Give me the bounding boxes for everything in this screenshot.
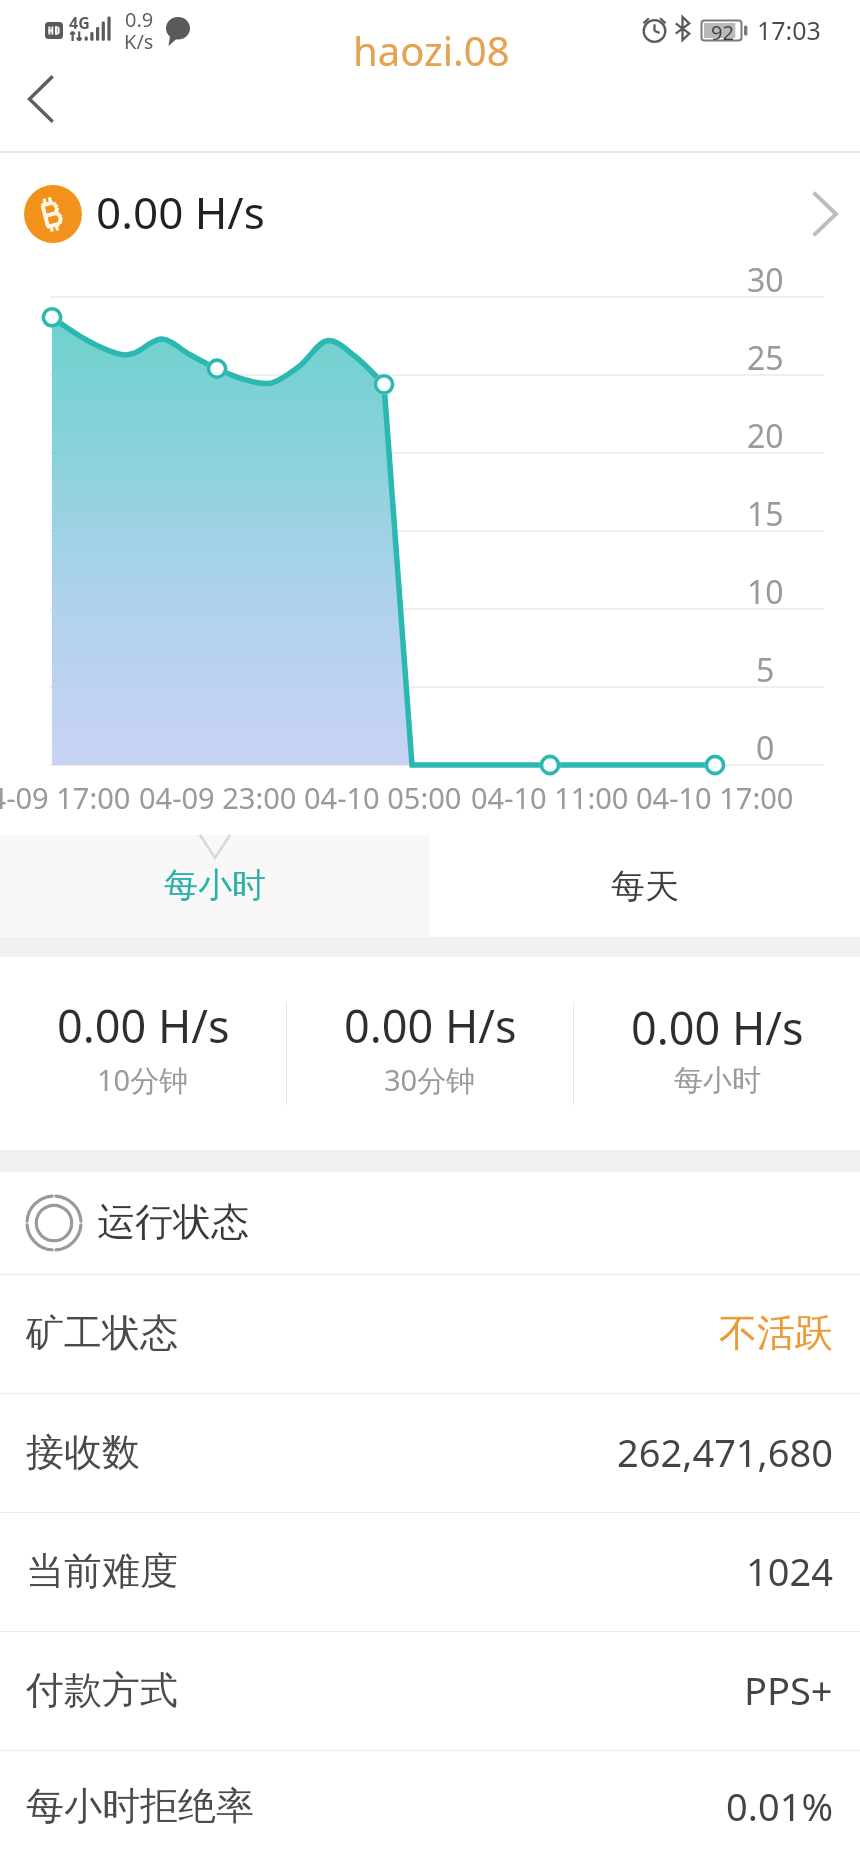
staticText: 04-10 11:00 bbox=[471, 778, 629, 817]
staticText: 0.01% bbox=[726, 1780, 833, 1832]
staticText: 0.00 H/s bbox=[57, 995, 230, 1056]
staticText: 付款方式 bbox=[26, 1666, 178, 1714]
button[interactable]: 0.00 H/s bbox=[0, 1001, 286, 1106]
staticText: 当前难度 bbox=[26, 1547, 178, 1595]
staticText: 每天 bbox=[611, 865, 679, 908]
staticText: 30 bbox=[747, 258, 784, 302]
staticText: 矿工状态 bbox=[26, 1309, 178, 1357]
staticText: 5 bbox=[756, 648, 775, 692]
staticText: 04-09 23:00 bbox=[139, 778, 297, 817]
staticText: 每小时 bbox=[674, 1062, 761, 1099]
staticText: PPS+ bbox=[744, 1664, 833, 1716]
staticText: 每小时拒绝率 bbox=[26, 1782, 254, 1830]
button[interactable]: 矿工状态 bbox=[0, 1274, 860, 1393]
button[interactable]: 运行状态 bbox=[0, 1172, 860, 1274]
button[interactable]: 每小时 bbox=[0, 835, 430, 937]
staticText: 20 bbox=[747, 414, 784, 458]
staticText: 04-10 17:00 bbox=[636, 778, 794, 817]
button[interactable]: 0.00 H/s bbox=[287, 1001, 573, 1106]
staticText: 接收数 bbox=[26, 1428, 140, 1476]
staticText: 17:03 bbox=[757, 13, 821, 47]
staticText: 15 bbox=[747, 492, 784, 536]
staticText: 10分钟 bbox=[97, 1060, 189, 1100]
staticText: 0.00 H/s bbox=[96, 182, 265, 242]
button[interactable]: 每天 bbox=[430, 835, 860, 937]
other: Details bbox=[814, 194, 836, 234]
staticText: 04-10 05:00 bbox=[304, 778, 462, 817]
staticText: 1024 bbox=[746, 1545, 833, 1597]
staticText: 不活跃 bbox=[719, 1309, 833, 1357]
staticText: 每小时 bbox=[164, 864, 266, 907]
button[interactable]: 接收数 bbox=[0, 1393, 860, 1512]
button[interactable]: 当前难度 bbox=[0, 1512, 860, 1631]
staticText: 0.00 H/s bbox=[631, 997, 804, 1058]
button[interactable]: 每小时拒绝率 bbox=[0, 1750, 860, 1863]
staticText: 10 bbox=[747, 570, 784, 614]
staticText: 92 bbox=[711, 19, 734, 46]
staticText: 25 bbox=[747, 336, 784, 380]
staticText: 0.9 bbox=[125, 6, 154, 33]
staticText: haozi.08 bbox=[353, 23, 510, 77]
staticText: 0.00 H/s bbox=[344, 995, 517, 1056]
button[interactable]: 付款方式 bbox=[0, 1631, 860, 1750]
staticText: 运行状态 bbox=[97, 1198, 249, 1246]
staticText: 04-09 17:00 bbox=[0, 778, 131, 817]
staticText: K/s bbox=[124, 28, 154, 55]
staticText: 4G bbox=[69, 12, 90, 34]
staticText: 262,471,680 bbox=[617, 1426, 833, 1478]
staticText: 0 bbox=[756, 726, 775, 770]
button[interactable]: 0.00 H/s bbox=[574, 1003, 860, 1105]
button[interactable]: 0.00 H/s bbox=[0, 153, 860, 275]
staticText: 30分钟 bbox=[384, 1060, 476, 1100]
button[interactable]: Back bbox=[5, 64, 75, 134]
